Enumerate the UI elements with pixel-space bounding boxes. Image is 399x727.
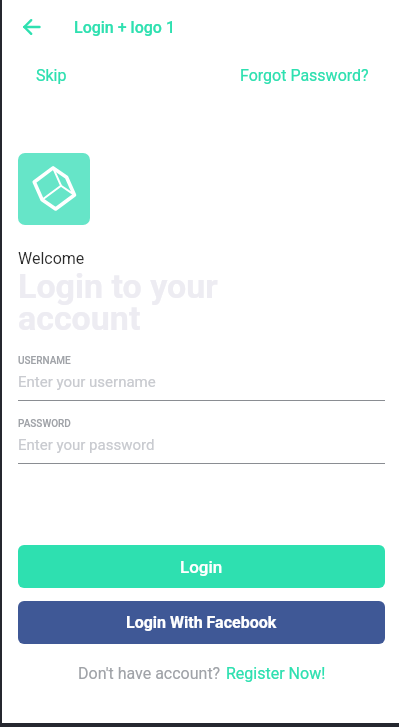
- staticText: USERNAME: [18, 355, 71, 367]
- staticText: Login With Facebook: [126, 613, 277, 632]
- staticText: Enter your username: [18, 373, 156, 391]
- button[interactable]: Login With Facebook: [18, 601, 385, 644]
- button[interactable]: Register Now!: [226, 664, 326, 683]
- staticText: Login to your account: [18, 266, 218, 338]
- staticText: Welcome: [18, 249, 85, 268]
- button[interactable]: Login: [18, 545, 385, 588]
- button[interactable]: App logo: [18, 153, 90, 225]
- staticText: Login: [180, 557, 223, 577]
- staticText: PASSWORD: [18, 418, 71, 430]
- staticText: Login + logo 1: [74, 18, 175, 37]
- button[interactable]: Skip: [36, 66, 67, 85]
- button[interactable]: Back: [21, 15, 45, 39]
- staticText: Forgot Password?: [240, 66, 369, 85]
- staticText: Skip: [36, 66, 67, 85]
- staticText: Enter your password: [18, 436, 155, 454]
- staticText: Don't have account?: [78, 664, 221, 683]
- button[interactable]: Forgot Password?: [240, 66, 369, 85]
